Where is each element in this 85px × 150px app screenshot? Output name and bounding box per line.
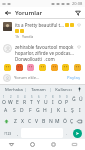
button[interactable]: Filtrele xyxy=(73,8,82,17)
button[interactable]: Emoji xyxy=(39,64,46,71)
staticText: 8 xyxy=(52,95,54,99)
staticText: Tamam xyxy=(31,87,46,93)
staticText: its a Pretty beautiful time xyxy=(15,22,64,28)
staticText: P xyxy=(65,99,69,104)
staticText: H xyxy=(43,107,47,114)
button[interactable]: zehirable favourtool moqok xyxy=(3,43,82,62)
staticText: 3 xyxy=(17,95,19,99)
staticText: X xyxy=(21,118,24,125)
button[interactable]: S xyxy=(10,106,18,115)
button[interactable]: , xyxy=(14,128,21,138)
staticText: 9 xyxy=(59,95,61,99)
staticText: O xyxy=(58,99,62,104)
staticText: I xyxy=(52,99,54,104)
button[interactable]: Ana ekran xyxy=(22,139,43,150)
staticText: 2 xyxy=(10,95,12,99)
button[interactable]: Beğen xyxy=(76,44,82,50)
staticText: zehirable favourtool moqok xyxy=(15,44,74,50)
button[interactable]: its a Pretty beautiful time xyxy=(3,21,82,40)
staticText: Ş xyxy=(71,107,74,114)
button[interactable]: Emoji xyxy=(51,64,58,71)
staticText: Merhaba xyxy=(5,87,23,93)
button[interactable]: Beğen xyxy=(76,22,82,28)
button[interactable]: Gönder xyxy=(73,129,82,138)
button[interactable]: H xyxy=(41,106,48,115)
staticText: T xyxy=(30,99,33,104)
staticText: 0 xyxy=(66,95,68,99)
button[interactable]: Sesli giriş xyxy=(75,85,83,94)
button[interactable]: Sil xyxy=(75,116,84,127)
button[interactable]: B xyxy=(40,117,47,126)
button[interactable]: Emoji xyxy=(4,64,11,71)
button[interactable]: F xyxy=(26,106,34,115)
staticText: ?123 xyxy=(4,131,12,136)
staticText: 1h Yanıtla xyxy=(15,34,34,39)
staticText: , xyxy=(17,131,19,136)
button[interactable]: Ç xyxy=(68,117,75,126)
button[interactable]: Shift xyxy=(1,116,11,127)
button[interactable]: Emoji xyxy=(74,64,81,71)
button[interactable]: Emoji xyxy=(62,64,69,71)
button[interactable]: Kullanıcı xyxy=(51,85,75,94)
button[interactable]: 0 xyxy=(63,95,70,104)
staticText: Y xyxy=(37,99,40,104)
button[interactable]: 3 xyxy=(14,95,21,104)
staticText: E xyxy=(16,99,19,104)
staticText: B xyxy=(42,118,46,125)
staticText: . xyxy=(66,131,68,136)
button[interactable]: 5 xyxy=(28,95,35,104)
button[interactable]: Klavyeyi gizle xyxy=(64,139,85,150)
staticText: 6 xyxy=(38,95,40,99)
button[interactable]: 1 xyxy=(1,95,7,104)
button[interactable]: Ğ xyxy=(70,95,77,104)
button[interactable]: ?123 xyxy=(1,128,14,138)
staticText: A xyxy=(4,107,8,114)
staticText: J xyxy=(51,107,53,114)
staticText: M xyxy=(55,118,60,125)
button[interactable]: N xyxy=(47,117,54,126)
button[interactable]: J xyxy=(48,106,55,115)
staticText: K xyxy=(57,107,61,114)
button[interactable]: . xyxy=(63,128,70,138)
button[interactable]: Geri xyxy=(3,8,12,17)
button[interactable]: 8 xyxy=(49,95,56,104)
button[interactable]: Paylaş xyxy=(66,74,82,82)
button[interactable]: Son uygulamalar xyxy=(43,139,64,150)
staticText: Yorum ekle... xyxy=(14,75,66,81)
button[interactable]: 4 xyxy=(21,95,28,104)
button[interactable]: 2 xyxy=(7,95,14,104)
staticText: Q xyxy=(2,99,6,104)
button[interactable]: Z xyxy=(11,117,19,126)
button[interactable]: M xyxy=(54,117,61,126)
button[interactable]: Ö xyxy=(61,117,68,126)
button[interactable]: L xyxy=(62,106,69,115)
button[interactable]: K xyxy=(55,106,62,115)
button[interactable]: Geri xyxy=(0,139,22,150)
staticText: I xyxy=(79,107,81,114)
staticText: Yorumlar xyxy=(15,9,43,17)
button[interactable]: 9 xyxy=(56,95,63,104)
button[interactable]: Ü xyxy=(77,95,84,104)
button[interactable]: A xyxy=(2,106,10,115)
staticText: D xyxy=(20,107,24,114)
button[interactable]: Ş xyxy=(69,106,76,115)
button[interactable]: Tamam xyxy=(26,85,50,94)
staticText: 1 xyxy=(3,95,5,99)
button[interactable]: X xyxy=(19,117,26,126)
button[interactable]: D xyxy=(18,106,26,115)
button[interactable]: Emoji xyxy=(27,64,34,71)
button[interactable]: 6 xyxy=(35,95,42,104)
button[interactable]: C xyxy=(26,117,33,126)
staticText: hoparlor, zifirde ve podcast citer xyxy=(15,50,74,56)
button[interactable]: 7 xyxy=(42,95,49,104)
button[interactable]: V xyxy=(33,117,40,126)
staticText: C xyxy=(28,118,32,125)
button[interactable]: I xyxy=(76,106,83,115)
button[interactable]: G xyxy=(34,106,41,115)
button[interactable]: Merhaba xyxy=(2,85,25,94)
staticText: L xyxy=(64,107,67,114)
staticText: S xyxy=(13,107,16,114)
button[interactable]: Emoji xyxy=(16,64,23,71)
staticText: 4 xyxy=(24,95,26,99)
